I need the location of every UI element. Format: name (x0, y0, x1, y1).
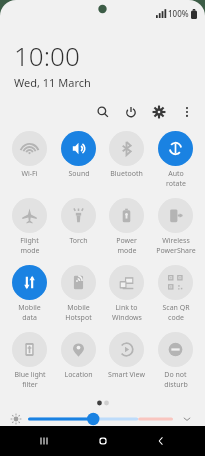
staticText: Link to (115, 303, 138, 313)
button[interactable]: Blue light (6, 329, 53, 393)
button[interactable]: Torch (55, 195, 102, 249)
button[interactable]: Power (103, 195, 150, 259)
staticText: Auto (168, 169, 184, 179)
button[interactable]: Flight (6, 195, 53, 259)
button[interactable]: Smart View (103, 329, 150, 383)
staticText: code (168, 313, 184, 323)
button[interactable]: More options (177, 102, 197, 122)
staticText: 100% (168, 8, 189, 19)
staticText: Windows (112, 313, 142, 323)
button[interactable]: Power (121, 102, 141, 122)
staticText: data (22, 313, 37, 323)
staticText: filter (22, 380, 38, 390)
staticText: rotate (166, 179, 186, 189)
button[interactable] (28, 412, 173, 426)
staticText: mode (20, 246, 40, 256)
button[interactable]: Location (55, 329, 102, 383)
button[interactable]: Home (88, 426, 118, 456)
staticText: Scan QR (162, 303, 190, 313)
staticText: PowerShare (156, 246, 196, 256)
button[interactable]: Bluetooth (103, 128, 150, 182)
staticText: Wireless (162, 236, 190, 246)
staticText: disturb (164, 380, 188, 390)
staticText: mode (117, 246, 137, 256)
button[interactable]: Wireless (152, 195, 199, 259)
button[interactable]: Link to (103, 262, 150, 326)
button[interactable]: Wi-Fi (6, 128, 53, 182)
button[interactable]: Auto (152, 128, 199, 192)
button[interactable]: Back (146, 426, 176, 456)
staticText: Wed, 11 March (14, 75, 91, 90)
button[interactable]: Mobile (55, 262, 102, 326)
button[interactable]: Sound (55, 128, 102, 182)
button[interactable]: Do not (152, 329, 199, 393)
staticText: 10:00 (14, 38, 80, 73)
staticText: Location (64, 370, 93, 380)
staticText: Mobile (18, 303, 41, 313)
staticText: Blue light (14, 370, 46, 380)
staticText: Wi-Fi (21, 169, 38, 179)
staticText: Smart View (108, 370, 145, 380)
staticText: Do not (164, 370, 187, 380)
button[interactable]: Expand brightness settings (179, 412, 195, 426)
staticText: Flight (20, 236, 39, 246)
staticText: Torch (69, 236, 88, 246)
button[interactable]: Scan QR (152, 262, 199, 326)
staticText: Bluetooth (110, 169, 143, 179)
staticText: Mobile (67, 303, 90, 313)
button[interactable]: Mobile (6, 262, 53, 326)
button[interactable]: Recents (29, 426, 59, 456)
staticText: Hotspot (65, 313, 92, 323)
button[interactable]: Settings (149, 102, 169, 122)
staticText: Power (116, 236, 137, 246)
staticText: Sound (68, 169, 90, 179)
button[interactable]: Search (93, 102, 113, 122)
